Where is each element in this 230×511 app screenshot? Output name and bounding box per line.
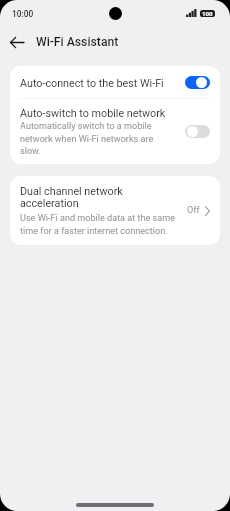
button[interactable]: Toggle on: [185, 76, 210, 89]
staticText: Auto-switch to mobile network: [20, 107, 166, 120]
button[interactable]: Auto-switch to mobile network: [10, 99, 220, 164]
button[interactable]: Back: [0, 29, 33, 55]
button[interactable]: Dual channel network acceleration: [10, 176, 220, 245]
staticText: Auto-connect to the best Wi-Fi: [20, 77, 170, 90]
staticText: 100: [202, 10, 213, 17]
button[interactable]: Toggle off: [185, 125, 210, 138]
staticText: 10:00: [12, 9, 34, 19]
staticText: Use Wi-Fi and mobile data at the same ti…: [20, 213, 178, 236]
staticText: Wi-Fi Assistant: [36, 35, 119, 49]
staticText: Automatically switch to a mobile network…: [20, 121, 170, 156]
staticText: Dual channel network acceleration: [20, 185, 178, 209]
button[interactable]: Auto-connect to the best Wi-Fi: [10, 66, 220, 98]
staticText: Off: [187, 205, 200, 216]
